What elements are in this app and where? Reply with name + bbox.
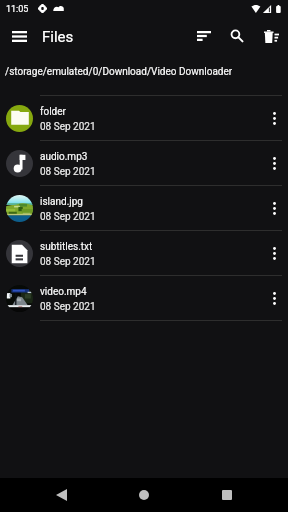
staticText: audio.mp3 [40, 151, 88, 163]
staticText: video.mp4 [40, 286, 87, 298]
button[interactable]: Search [218, 18, 255, 54]
button[interactable]: folder [0, 96, 288, 141]
button[interactable]: video.mp4 [0, 276, 288, 321]
button[interactable]: More options [260, 231, 288, 276]
staticText: Files [42, 28, 74, 46]
button[interactable]: More options [260, 141, 288, 186]
button[interactable]: More options [260, 186, 288, 231]
button[interactable]: /storage/emulated/0/Download/Video Downl… [0, 54, 288, 96]
button[interactable]: Back [44, 478, 78, 512]
staticText: island.jpg [40, 196, 83, 208]
button[interactable]: Open navigation menu [0, 18, 38, 54]
staticText: 11:05 [6, 4, 29, 15]
staticText: 08 Sep 2021 [40, 256, 96, 268]
button[interactable]: More options [260, 276, 288, 321]
button[interactable]: Delete [252, 18, 288, 54]
staticText: 08 Sep 2021 [40, 211, 96, 223]
button[interactable]: audio.mp3 [0, 141, 288, 186]
staticText: /storage/emulated/0/Download/Video Downl… [5, 66, 233, 78]
staticText: 08 Sep 2021 [40, 166, 96, 178]
button[interactable]: Home [127, 478, 161, 512]
button[interactable]: Sort [185, 18, 222, 54]
staticText: folder [40, 106, 66, 118]
button[interactable]: island.jpg [0, 186, 288, 231]
button[interactable]: subtitles.txt [0, 231, 288, 276]
staticText: 08 Sep 2021 [40, 301, 96, 313]
staticText: 08 Sep 2021 [40, 121, 96, 133]
button[interactable]: More options [260, 96, 288, 141]
button[interactable]: Recent apps [210, 478, 244, 512]
staticText: subtitles.txt [40, 241, 93, 253]
